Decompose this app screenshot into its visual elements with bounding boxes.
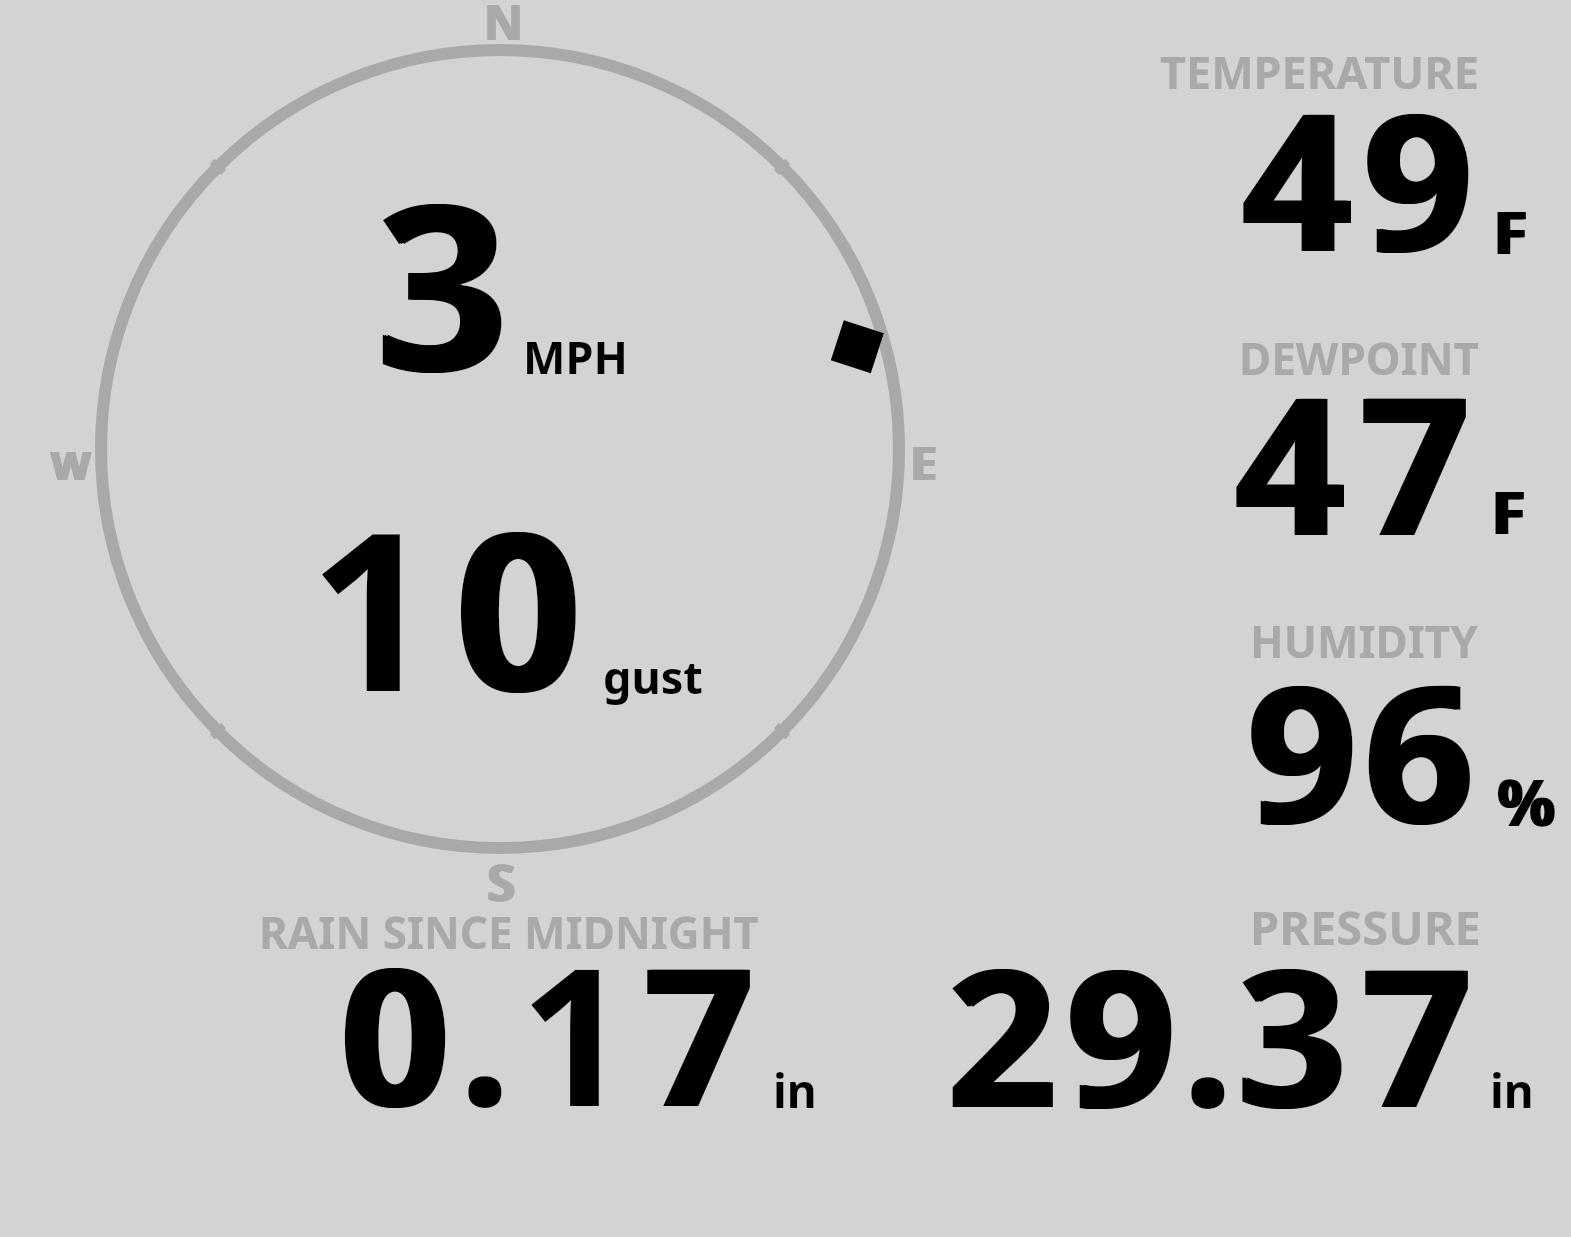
staticText: N <box>484 0 524 54</box>
staticText: % <box>1497 758 1555 845</box>
staticText: S <box>489 848 517 916</box>
staticText: E <box>912 430 939 494</box>
staticText: 9 <box>1250 619 1360 879</box>
staticText: N <box>483 0 523 54</box>
staticText: 4 <box>1238 331 1348 591</box>
staticText: 4 <box>1245 47 1355 307</box>
staticText: 3 <box>379 125 511 438</box>
staticText: 6 <box>1367 619 1477 879</box>
staticText: 0 <box>340 902 450 1162</box>
staticText: RAIN SINCE MIDNIGHT <box>259 902 759 962</box>
staticText: E <box>910 430 937 494</box>
staticText: W <box>51 437 90 491</box>
staticText: 9 <box>1067 903 1177 1163</box>
staticText: E <box>909 430 936 494</box>
staticText: 9 <box>1366 47 1476 307</box>
staticText: % <box>1496 758 1554 845</box>
staticText: F <box>1494 190 1527 272</box>
staticText: 9 <box>1361 47 1471 307</box>
staticText: 3 <box>1237 903 1347 1163</box>
staticText: 9 <box>1245 619 1355 879</box>
staticText: 7 <box>1358 331 1468 591</box>
staticText: 9 <box>1248 619 1358 879</box>
button[interactable]: Rain since midnight 0.17 inches <box>240 900 840 1120</box>
staticText: 7 <box>1365 903 1475 1163</box>
staticText: 6 <box>1362 619 1472 879</box>
staticText: 3 <box>374 125 506 438</box>
staticText: % <box>1499 758 1557 845</box>
button[interactable]: Temperature 49 degrees Fahrenheit <box>1150 40 1550 270</box>
staticText: TEMPERATURE <box>1160 41 1479 102</box>
staticText: 4 <box>1240 47 1350 307</box>
staticText: 0 <box>343 902 453 1162</box>
staticText: 0 <box>338 902 448 1162</box>
staticText: 0 <box>458 456 584 756</box>
staticText: S <box>486 848 514 916</box>
staticText: 2 <box>945 903 1055 1163</box>
staticText: DEWPOINT <box>1239 328 1479 388</box>
staticText: S <box>487 848 515 916</box>
staticText: PRESSURE <box>1250 895 1481 959</box>
staticText: 4 <box>1236 331 1346 591</box>
staticText: 3 <box>1235 903 1345 1163</box>
staticText: 9 <box>1064 903 1174 1163</box>
staticText: HUMIDITY <box>1250 611 1478 671</box>
staticText: 7 <box>647 902 757 1162</box>
staticText: 4 <box>1242 47 1352 307</box>
staticText: 7 <box>1362 903 1472 1163</box>
staticText: 7 <box>1361 331 1471 591</box>
staticText: W <box>53 437 92 491</box>
staticText: F <box>1492 470 1525 552</box>
button[interactable]: Wind speed 3 MPH, gusting 10, from the e… <box>60 0 950 910</box>
staticText: 2 <box>950 903 1060 1163</box>
staticText: 3 <box>1240 903 1350 1163</box>
staticText: 0 <box>453 456 579 756</box>
staticText: F <box>1490 470 1523 552</box>
staticText: 0 <box>455 456 581 756</box>
staticText: 7 <box>645 902 755 1162</box>
staticText: F <box>1496 190 1529 272</box>
staticText: . <box>1181 903 1235 1163</box>
staticText: 9 <box>1364 47 1474 307</box>
staticText: MPH <box>523 326 628 387</box>
staticText: W <box>50 437 89 491</box>
staticText: 4 <box>1233 331 1343 591</box>
staticText: F <box>1494 470 1527 552</box>
staticText: 3 <box>376 125 508 438</box>
staticText: gust <box>603 646 703 707</box>
staticText: 1 <box>520 902 630 1162</box>
staticText: N <box>485 0 525 54</box>
staticText: 2 <box>947 903 1057 1163</box>
staticText: 7 <box>1363 331 1473 591</box>
staticText: . <box>458 902 512 1162</box>
staticText: 9 <box>1069 903 1179 1163</box>
staticText: 7 <box>642 902 752 1162</box>
button[interactable]: Pressure 29.37 inches <box>930 900 1550 1120</box>
button[interactable]: Dewpoint 47 degrees Fahrenheit <box>1150 325 1550 555</box>
staticText: in <box>773 1059 817 1122</box>
button[interactable]: Humidity 96 percent <box>1150 610 1550 840</box>
staticText: 1 <box>309 456 435 756</box>
staticText: F <box>1492 190 1525 272</box>
staticText: 7 <box>1360 903 1470 1163</box>
staticText: 6 <box>1364 619 1474 879</box>
staticText: in <box>1490 1059 1534 1122</box>
